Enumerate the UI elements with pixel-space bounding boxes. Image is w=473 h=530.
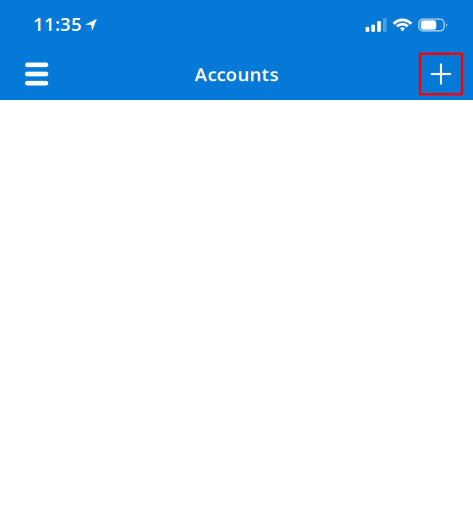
button[interactable]: Menu [14, 49, 59, 98]
staticText: Accounts [194, 62, 278, 86]
button[interactable]: Add account [420, 54, 462, 94]
staticText: 11:35 [33, 11, 82, 36]
